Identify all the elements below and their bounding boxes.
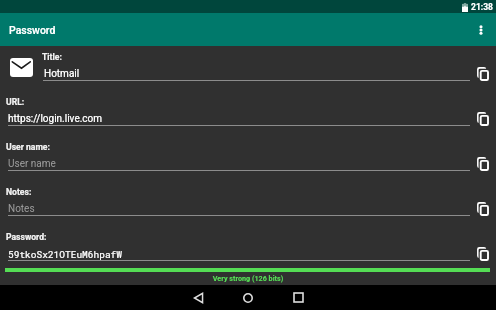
- button[interactable]: Email icon: [10, 58, 33, 77]
- button[interactable]: Home: [223, 285, 273, 310]
- staticText: Password: [9, 24, 56, 36]
- button[interactable]: User name:: [0, 134, 496, 179]
- button[interactable]: Back: [173, 285, 223, 310]
- button[interactable]: Copy: [470, 61, 496, 87]
- staticText: Password:: [6, 232, 47, 242]
- staticText: Notes:: [6, 187, 32, 197]
- button[interactable]: URL:: [0, 89, 496, 134]
- staticText: Notes: [8, 203, 35, 215]
- staticText: Very strong (126 bits): [0, 274, 496, 282]
- staticText: 59tkoSx21OTEuM6hpafW: [8, 248, 123, 261]
- staticText: Title:: [42, 52, 62, 62]
- button[interactable]: Copy: [470, 241, 496, 267]
- button[interactable]: Password:: [0, 224, 496, 269]
- staticText: Hotmail: [44, 68, 80, 80]
- button[interactable]: More options: [465, 14, 496, 45]
- staticText: User name: [8, 158, 56, 170]
- staticText: https://login.live.com: [8, 113, 103, 125]
- button[interactable]: Copy: [470, 106, 496, 132]
- button[interactable]: Notes:: [0, 179, 496, 224]
- button[interactable]: Email icon: [0, 44, 496, 89]
- staticText: User name:: [6, 142, 50, 152]
- button[interactable]: Copy: [470, 151, 496, 177]
- staticText: URL:: [6, 97, 25, 107]
- button[interactable]: Copy: [470, 196, 496, 222]
- button[interactable]: Recents: [273, 285, 323, 310]
- staticText: 21:38: [471, 2, 493, 12]
